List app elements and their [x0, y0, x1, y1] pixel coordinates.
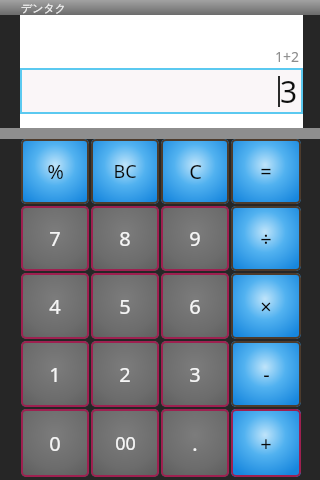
button[interactable]: . — [161, 409, 229, 477]
button[interactable]: C — [161, 139, 229, 204]
button[interactable]: Divide — [231, 206, 301, 271]
button[interactable]: 3 — [20, 68, 303, 114]
staticText: = — [260, 158, 272, 185]
staticText: 00 — [115, 431, 136, 456]
button[interactable]: 00 — [91, 409, 159, 477]
button[interactable]: 7 — [21, 206, 89, 271]
staticText: C — [189, 158, 202, 185]
staticText: デンタク — [21, 1, 67, 15]
button[interactable]: 9 — [161, 206, 229, 271]
staticText: 1 — [49, 361, 61, 388]
button[interactable]: 0 — [21, 409, 89, 477]
staticText: 9 — [189, 225, 201, 252]
staticText: . — [192, 430, 198, 457]
staticText: × — [260, 293, 272, 320]
button[interactable]: Plus — [231, 409, 301, 477]
staticText: 3 — [280, 71, 298, 112]
staticText: 4 — [49, 293, 61, 320]
button[interactable]: Equals — [231, 139, 301, 204]
button[interactable]: 3 — [161, 341, 229, 407]
button[interactable]: 8 — [91, 206, 159, 271]
staticText: 6 — [189, 293, 201, 320]
button[interactable]: 5 — [91, 273, 159, 339]
button[interactable]: BC — [91, 139, 159, 204]
staticText: % — [47, 158, 64, 185]
staticText: 7 — [49, 225, 61, 252]
staticText: - — [263, 361, 270, 388]
staticText: ÷ — [260, 225, 272, 252]
staticText: + — [260, 430, 272, 457]
button[interactable]: 2 — [91, 341, 159, 407]
button[interactable]: Multiply — [231, 273, 301, 339]
staticText: 8 — [119, 225, 131, 252]
button[interactable]: 6 — [161, 273, 229, 339]
button[interactable]: 4 — [21, 273, 89, 339]
button[interactable]: Percent — [21, 139, 89, 204]
staticText: 2 — [119, 361, 131, 388]
button[interactable]: Minus — [231, 341, 301, 407]
staticText: 1+2 — [275, 47, 300, 66]
staticText: 5 — [119, 293, 131, 320]
button[interactable]: 1 — [21, 341, 89, 407]
staticText: 3 — [189, 361, 201, 388]
staticText: BC — [113, 159, 137, 184]
staticText: 0 — [49, 430, 61, 457]
